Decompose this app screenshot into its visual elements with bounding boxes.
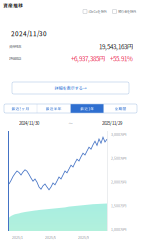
staticText: 2024/11/30 [19,120,39,126]
staticText: 預り金を除外 [118,9,136,14]
button[interactable]: 預り金を除外 [112,9,136,14]
staticText: 2025/11/29 [102,120,122,126]
staticText: ～ [68,120,72,126]
staticText: 2025/5 [45,235,56,240]
staticText: 全期間 [115,106,127,111]
staticText: 詳細を表示する→ [54,85,86,91]
staticText: 最近3ヶ月 [11,106,29,111]
staticText: 最近半年 [46,106,62,111]
staticText: 資産推移 [3,2,23,9]
staticText: 最近1年 [80,106,94,111]
staticText: 評価損益 [9,56,21,61]
staticText: 2024/11/30 [11,29,47,38]
staticText: 2,000万円 [111,179,126,184]
staticText: 1,000万円 [111,227,126,232]
button[interactable]: iDeCoを除外 [83,9,106,14]
staticText: +6,937,385円 [71,54,105,63]
staticText: iDeCoを除外 [88,9,106,14]
button[interactable]: 最近1年 [71,104,104,113]
staticText: 3,000万円 [111,132,126,137]
staticText: 2,500万円 [111,156,126,161]
staticText: 1,500万円 [111,203,126,208]
button[interactable]: 詳細を表示する→ [12,82,129,94]
staticText: 2025/1 [12,235,23,240]
staticText: +55.91% [110,54,133,63]
staticText: 19,543,163円 [99,42,133,51]
staticText: 2025/9 [78,235,89,240]
staticText: 資産残高 [9,44,21,49]
button[interactable]: 全期間 [104,104,137,113]
button[interactable]: 最近半年 [37,104,70,113]
button[interactable]: 最近3ヶ月 [4,104,37,113]
